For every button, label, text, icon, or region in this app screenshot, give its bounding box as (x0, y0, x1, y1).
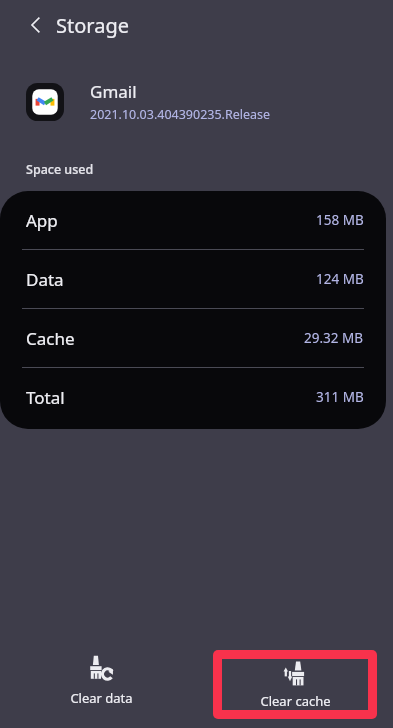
staticText: Total (26, 386, 65, 409)
staticText: Gmail (90, 80, 137, 103)
button[interactable]: Total (0, 368, 386, 426)
staticText: Clear cache (260, 692, 331, 710)
button[interactable]: Clear data (34, 646, 168, 714)
button[interactable]: Cache (0, 309, 386, 367)
staticText: 158 MB (316, 211, 364, 229)
button[interactable]: Clear cache (222, 659, 368, 710)
button[interactable]: Back (18, 7, 54, 43)
button[interactable]: App (0, 191, 386, 249)
staticText: App (26, 209, 58, 232)
staticText: 124 MB (316, 270, 364, 288)
staticText: 29.32 MB (304, 329, 364, 347)
staticText: Cache (26, 327, 75, 350)
staticText: Data (26, 268, 64, 291)
staticText: 311 MB (316, 388, 364, 406)
staticText: Storage (56, 12, 129, 39)
staticText: 2021.10.03.404390235.Release (90, 106, 271, 123)
staticText: Space used (26, 161, 94, 178)
button[interactable]: Data (0, 250, 386, 308)
staticText: Clear data (70, 689, 133, 707)
